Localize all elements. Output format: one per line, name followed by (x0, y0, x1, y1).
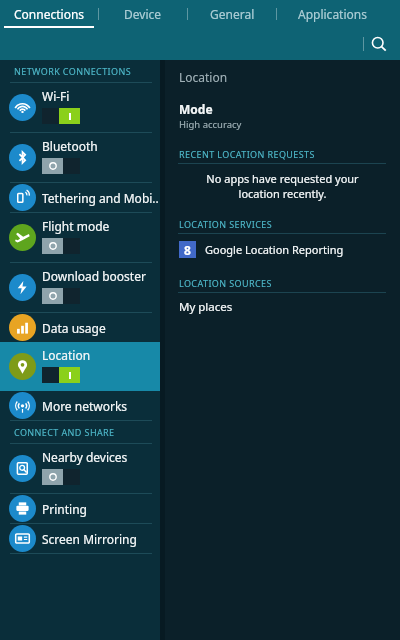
staticText: Applications (298, 6, 367, 22)
staticText: Screen Mirroring (42, 531, 137, 547)
staticText: Bluetooth (42, 138, 98, 154)
staticText: More networks (42, 398, 128, 414)
staticText: 8 (184, 242, 191, 258)
staticText: Download booster (42, 268, 146, 284)
staticText: Tethering and Mobi.. (42, 190, 159, 206)
staticText: Data usage (42, 320, 106, 336)
button[interactable]: Bluetooth (0, 133, 160, 182)
button[interactable]: More networks (0, 391, 160, 420)
button[interactable]: Connections (0, 0, 98, 28)
staticText: Nearby devices (42, 449, 128, 465)
staticText: LOCATION SOURCES (179, 277, 272, 289)
staticText: Location (179, 69, 228, 85)
staticText: RECENT LOCATION REQUESTS (179, 148, 315, 160)
button[interactable]: Location (0, 342, 160, 391)
button[interactable]: Tethering and Mobi.. (0, 183, 160, 212)
button[interactable]: Download booster (0, 263, 160, 312)
button[interactable]: Device (99, 0, 187, 28)
staticText: Wi-Fi (42, 88, 70, 104)
staticText: Google Location Reporting (205, 242, 344, 257)
staticText: Location (42, 347, 91, 363)
staticText: High accuracy (179, 118, 242, 131)
staticText: No apps have requested your location rec… (187, 171, 378, 201)
button[interactable]: Applications (277, 0, 387, 28)
button[interactable]: Printing (0, 494, 160, 523)
staticText: NETWORK CONNECTIONS (14, 65, 132, 77)
staticText: LOCATION SERVICES (179, 218, 273, 230)
staticText: General (210, 6, 255, 22)
staticText: My places (179, 299, 233, 315)
staticText: CONNECT AND SHARE (14, 426, 115, 438)
button[interactable]: My places (165, 293, 400, 321)
button[interactable]: Screen Mirroring (0, 524, 160, 553)
button[interactable]: Wi-Fi (0, 83, 160, 132)
button[interactable]: Flight mode (0, 213, 160, 262)
staticText: Flight mode (42, 218, 110, 234)
button[interactable]: Nearby devices (0, 444, 160, 493)
button[interactable]: Data usage (0, 313, 160, 342)
button[interactable]: Mode (165, 101, 400, 131)
staticText: Device (124, 6, 162, 22)
staticText: Mode (179, 101, 213, 117)
button[interactable]: General (188, 0, 276, 28)
staticText: Connections (14, 6, 85, 22)
staticText: Printing (42, 501, 87, 517)
button[interactable]: Search (364, 29, 394, 59)
button[interactable]: 8 (165, 234, 400, 264)
